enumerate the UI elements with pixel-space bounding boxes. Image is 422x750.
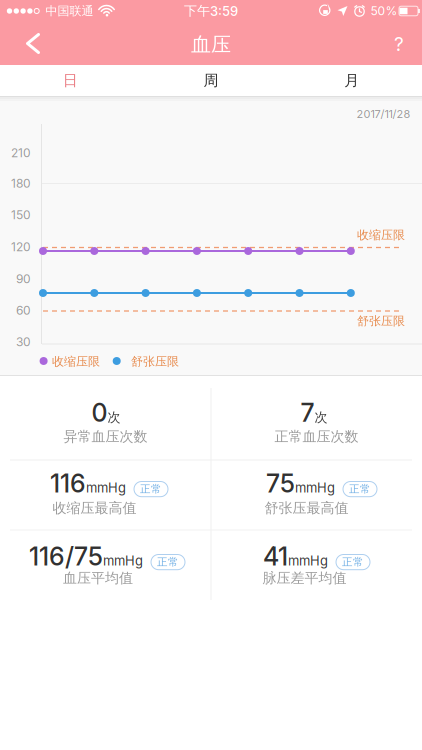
staticText: 次 <box>314 409 327 426</box>
button[interactable]: Help <box>384 24 414 63</box>
staticText: 舒张压限 <box>357 313 405 328</box>
staticText: 正常 <box>157 555 179 569</box>
staticText: 血压平均值 <box>63 569 133 587</box>
staticText: 血压 <box>191 32 231 57</box>
staticText: mmHg <box>288 553 328 569</box>
staticText: 正常 <box>342 555 364 569</box>
staticText: 7 <box>300 398 314 428</box>
staticText: 180 <box>11 176 31 191</box>
staticText: 30 <box>16 335 31 349</box>
staticText: 中国联通 <box>45 3 93 18</box>
staticText: 150 <box>11 208 31 222</box>
staticText: 正常 <box>349 482 371 496</box>
staticText: 月 <box>344 71 359 90</box>
staticText: ? <box>394 32 404 55</box>
staticText: 50% <box>370 4 397 18</box>
staticText: 正常血压次数 <box>274 428 358 445</box>
staticText: 41 <box>263 541 288 572</box>
staticText: 脉压差平均值 <box>262 569 346 587</box>
button[interactable]: 月 <box>281 65 422 96</box>
staticText: 周 <box>203 71 218 90</box>
button[interactable]: 日 <box>0 65 141 96</box>
staticText: 收缩压限 <box>52 354 100 369</box>
staticText: 0 <box>91 398 107 428</box>
staticText: 60 <box>16 303 31 318</box>
staticText: mmHg <box>103 553 143 569</box>
staticText: 异常血压次数 <box>63 428 147 445</box>
staticText: 90 <box>16 272 31 286</box>
staticText: 舒张压限 <box>131 354 179 369</box>
staticText: mmHg <box>86 480 126 496</box>
staticText: 日 <box>63 71 78 90</box>
button[interactable]: Back <box>14 23 52 64</box>
staticText: mmHg <box>295 480 335 496</box>
staticText: 75 <box>266 468 295 499</box>
staticText: 116/75 <box>29 541 103 572</box>
staticText: 下午3:59 <box>184 3 238 19</box>
button[interactable]: 周 <box>141 65 281 96</box>
staticText: 收缩压限 <box>357 227 405 242</box>
staticText: 116 <box>50 468 86 499</box>
staticText: 120 <box>11 240 31 254</box>
staticText: 次 <box>107 409 120 426</box>
staticText: 2017/11/28 <box>356 107 410 121</box>
staticText: 正常 <box>140 482 162 496</box>
staticText: 210 <box>11 146 31 160</box>
staticText: 舒张压最高值 <box>264 499 348 517</box>
staticText: 收缩压最高值 <box>52 499 136 517</box>
